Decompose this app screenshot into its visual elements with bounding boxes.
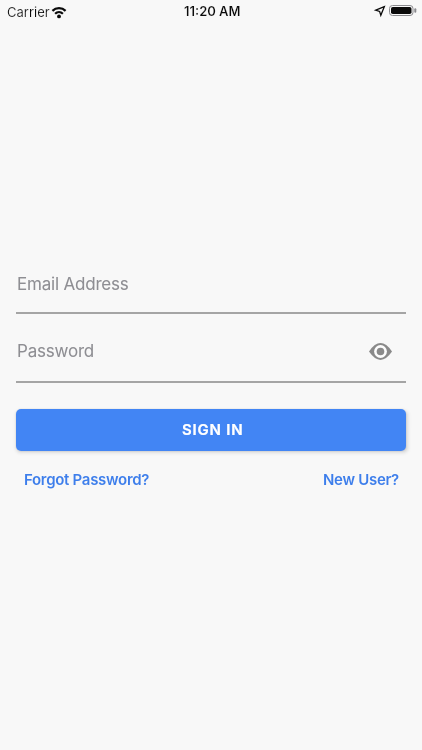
staticText: Password: [17, 341, 95, 362]
button[interactable]: [369, 344, 392, 359]
staticText: Carrier: [7, 4, 50, 20]
button[interactable]: SIGN IN: [16, 409, 406, 451]
staticText: Email Address: [17, 274, 129, 295]
button[interactable]: Forgot Password?: [24, 470, 150, 488]
staticText: 11:20 AM: [184, 3, 241, 19]
staticText: SIGN IN: [182, 420, 244, 438]
staticText: New User?: [323, 470, 399, 488]
button[interactable]: [16, 262, 406, 314]
staticText: Forgot Password?: [24, 470, 150, 488]
button[interactable]: New User?: [323, 470, 399, 488]
button[interactable]: [16, 330, 406, 383]
